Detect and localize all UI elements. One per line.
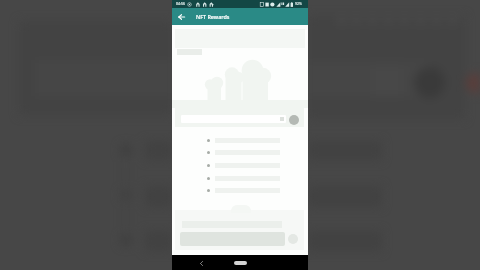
staticText: 04:56 [176, 1, 185, 6]
button[interactable]: Send [288, 234, 298, 244]
button[interactable] [207, 147, 282, 157]
button[interactable]: Back [175, 10, 188, 23]
staticText: NFT Rewards [196, 13, 230, 20]
button[interactable]: Profile [289, 115, 299, 125]
button[interactable]: Home [234, 261, 247, 265]
button[interactable] [207, 185, 282, 195]
button[interactable] [207, 135, 282, 145]
button[interactable] [207, 160, 282, 170]
button[interactable]: Back [195, 257, 207, 269]
button[interactable] [207, 173, 282, 183]
button[interactable] [181, 115, 286, 123]
staticText: 92% [295, 1, 302, 6]
